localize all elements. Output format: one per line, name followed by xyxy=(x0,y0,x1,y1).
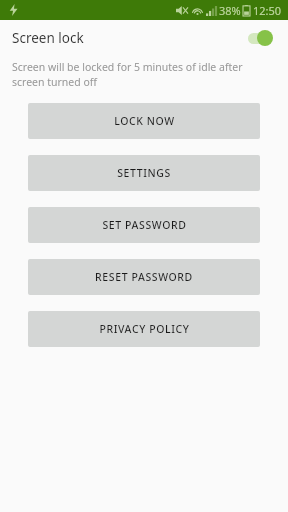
button[interactable]: PRIVACY POLICY xyxy=(28,311,260,347)
staticText: Screen lock xyxy=(12,29,244,47)
button[interactable]: SET PASSWORD xyxy=(28,207,260,243)
staticText: RESET PASSWORD xyxy=(95,270,193,284)
staticText: Screen will be locked for 5 minutes of i… xyxy=(12,60,270,89)
staticText: SETTINGS xyxy=(117,166,171,180)
button[interactable]: RESET PASSWORD xyxy=(28,259,260,295)
button[interactable]: SETTINGS xyxy=(28,155,260,191)
button[interactable]: Screen lock xyxy=(0,20,288,56)
staticText: PRIVACY POLICY xyxy=(99,322,190,336)
button[interactable]: LOCK NOW xyxy=(28,103,260,139)
staticText: LOCK NOW xyxy=(114,114,175,128)
staticText: 12:50 xyxy=(253,3,282,18)
staticText: SET PASSWORD xyxy=(102,218,187,232)
button[interactable]: Screen lock toggle xyxy=(244,30,274,46)
staticText: 38% xyxy=(219,3,241,18)
